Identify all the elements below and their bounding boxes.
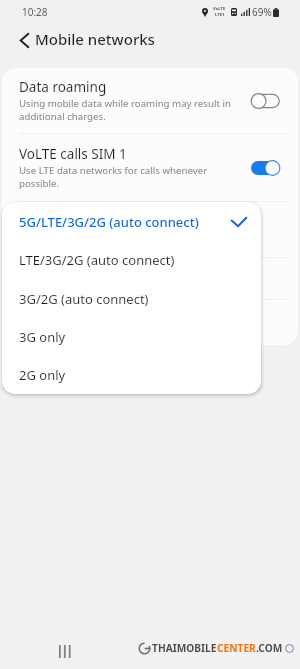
button[interactable]: On	[251, 160, 280, 176]
button[interactable]: Data roaming	[2, 68, 298, 133]
staticText: VoLTE calls SIM 1	[19, 145, 127, 163]
staticText: LTE1	[215, 12, 225, 18]
button[interactable]: Recent apps	[53, 639, 77, 663]
button[interactable]: 5G/LTE/3G/2G (auto connect)	[2, 202, 261, 241]
button[interactable]: 3G/2G (auto connect)	[2, 279, 261, 318]
staticText: 3G/2G (auto connect)	[19, 290, 247, 308]
staticText: VoLTE	[213, 6, 226, 12]
button[interactable]: LTE/3G/2G (auto connect)	[2, 241, 261, 279]
staticText: LTE/3G/2G (auto connect)	[19, 251, 247, 269]
staticText: 5G/LTE/3G/2G (auto connect)	[19, 213, 231, 231]
button[interactable]: VoLTE calls SIM 1	[2, 134, 298, 201]
staticText: 10:28	[22, 5, 48, 19]
staticText: Data roaming	[19, 78, 107, 96]
button[interactable]: Access Point Names	[2, 258, 298, 299]
button[interactable]: Navigate up	[12, 28, 36, 52]
staticText: .COM	[256, 641, 283, 655]
staticText: 2G only	[19, 366, 247, 384]
staticText: 69%	[252, 5, 272, 19]
staticText: Use LTE data networks for calls whenever…	[19, 164, 208, 190]
button[interactable]: 3G only	[2, 318, 261, 356]
staticText: 3G only	[19, 328, 247, 346]
button[interactable]: Network mode SIM 1	[2, 202, 298, 257]
button[interactable]: 2G only	[2, 356, 261, 394]
button[interactable]: Off	[251, 93, 280, 109]
staticText: CENTER	[217, 641, 256, 655]
staticText: Network mode SIM 1	[19, 214, 153, 232]
button[interactable]: Network operators	[2, 300, 298, 345]
staticText: THAIMOBILE	[152, 641, 217, 655]
staticText: Mobile networks	[35, 29, 155, 49]
staticText: Using mobile data while roaming may resu…	[19, 97, 231, 123]
